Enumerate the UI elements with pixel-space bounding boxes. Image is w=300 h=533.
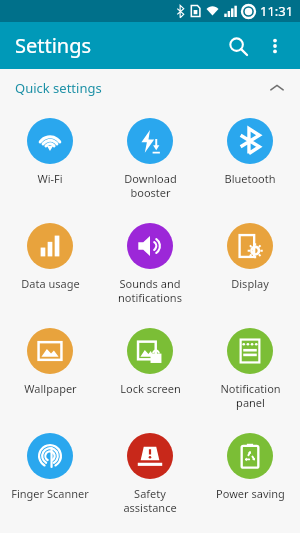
staticText: Finger Scanner	[11, 486, 89, 501]
button[interactable]: Quick settings	[0, 69, 300, 106]
button[interactable]: Finger Scanner	[0, 425, 100, 530]
staticText: Lock screen	[120, 381, 181, 396]
staticText: Sounds and notifications	[118, 276, 182, 305]
button[interactable]: Power saving	[200, 425, 300, 530]
staticText: Display	[231, 276, 269, 291]
button[interactable]: Bluetooth	[200, 110, 300, 215]
staticText: Notification panel	[220, 381, 281, 410]
button[interactable]: Notification panel	[200, 320, 300, 425]
staticText: Wallpaper	[24, 381, 77, 396]
staticText: Data usage	[21, 276, 80, 291]
button[interactable]: Lock screen	[100, 320, 200, 425]
button[interactable]: Search	[218, 26, 258, 66]
staticText: Power saving	[216, 486, 285, 501]
staticText: Settings	[15, 32, 92, 59]
staticText: Bluetooth	[224, 171, 276, 186]
button[interactable]: Display	[200, 215, 300, 320]
button[interactable]: Sounds and notifications	[100, 215, 200, 320]
staticText: Download booster	[124, 171, 177, 200]
button[interactable]: Safety assistance	[100, 425, 200, 530]
button[interactable]: Wi-Fi	[0, 110, 100, 215]
staticText: Safety assistance	[123, 486, 177, 515]
button[interactable]: Download booster	[100, 110, 200, 215]
staticText: Quick settings	[15, 79, 102, 97]
button[interactable]: More options	[258, 29, 292, 63]
staticText: Wi-Fi	[37, 171, 63, 186]
button[interactable]: Wallpaper	[0, 320, 100, 425]
staticText: 11:31	[260, 2, 294, 20]
button[interactable]: Data usage	[0, 215, 100, 320]
